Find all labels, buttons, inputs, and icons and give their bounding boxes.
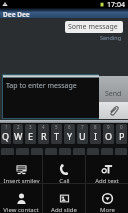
button[interactable]: 7 xyxy=(77,124,88,144)
button[interactable]: 8 xyxy=(90,124,101,144)
staticText: 5 xyxy=(55,124,58,130)
staticText: Add slide xyxy=(51,206,77,213)
staticText: L xyxy=(119,154,124,166)
button[interactable]: 4 xyxy=(38,124,49,144)
staticText: 9 xyxy=(107,124,110,130)
button[interactable]: 6 xyxy=(64,124,75,144)
button[interactable]: Add slide xyxy=(43,184,85,213)
staticText: P xyxy=(119,130,125,142)
staticText: G xyxy=(62,154,69,166)
staticText: E xyxy=(28,130,34,142)
button[interactable]: Tap to enter message xyxy=(3,75,99,118)
staticText: 7 xyxy=(81,124,84,130)
staticText: T xyxy=(54,130,60,142)
staticText: 6 xyxy=(68,124,71,130)
staticText: 8 xyxy=(94,124,97,130)
button[interactable]: 0 xyxy=(116,124,127,144)
button[interactable]: Add text xyxy=(86,155,128,183)
staticText: 0 xyxy=(120,124,123,130)
button[interactable]: 1 xyxy=(1,124,11,144)
staticText: Send xyxy=(105,89,122,99)
button[interactable]: Attach xyxy=(99,102,128,119)
staticText: O xyxy=(105,130,113,142)
button[interactable]: L xyxy=(115,148,127,168)
button[interactable]: H xyxy=(73,148,85,168)
staticText: U xyxy=(79,130,86,142)
staticText: S xyxy=(20,154,25,166)
staticText: R xyxy=(41,130,47,142)
staticText: 1 xyxy=(5,124,8,130)
staticText: 4 xyxy=(42,124,45,130)
staticText: Q xyxy=(2,130,10,142)
button[interactable]: 9 xyxy=(103,124,114,144)
staticText: I xyxy=(94,130,98,142)
button[interactable]: View contact xyxy=(0,184,42,213)
staticText: More xyxy=(100,206,115,213)
button[interactable]: 5 xyxy=(51,124,62,144)
staticText: 3 xyxy=(29,124,32,130)
button[interactable]: S xyxy=(16,148,29,168)
button[interactable]: Insert smiley xyxy=(0,155,42,183)
button[interactable]: Call xyxy=(43,155,85,183)
staticText: D xyxy=(34,154,41,166)
staticText: Tap to enter message xyxy=(6,81,77,91)
button[interactable]: Send xyxy=(99,76,128,102)
staticText: 2 xyxy=(17,124,20,130)
staticText: Add text xyxy=(95,177,119,183)
button[interactable]: D xyxy=(31,148,43,168)
staticText: Some message xyxy=(68,22,118,32)
staticText: View contact xyxy=(3,206,39,213)
staticText: A xyxy=(5,154,11,166)
staticText: W xyxy=(14,130,23,142)
staticText: Call xyxy=(59,177,70,183)
button[interactable]: K xyxy=(101,148,113,168)
button[interactable]: A xyxy=(1,148,14,168)
button[interactable]: 2 xyxy=(13,124,23,144)
button[interactable]: Dee Dee xyxy=(0,8,128,18)
button[interactable]: F xyxy=(45,148,57,168)
staticText: J xyxy=(92,154,95,166)
button[interactable]: J xyxy=(87,148,99,168)
button[interactable]: G xyxy=(59,148,71,168)
staticText: Dee Dee xyxy=(3,10,30,19)
staticText: H xyxy=(76,154,83,166)
staticText: F xyxy=(49,154,54,166)
button[interactable]: Some message xyxy=(65,21,123,33)
staticText: Insert smiley xyxy=(3,177,40,183)
staticText: Sending xyxy=(100,34,122,41)
button[interactable]: More xyxy=(86,184,128,213)
staticText: K xyxy=(104,154,110,166)
staticText: 17:04 xyxy=(107,0,125,8)
button[interactable]: 3 xyxy=(25,124,36,144)
staticText: Y xyxy=(67,130,73,142)
